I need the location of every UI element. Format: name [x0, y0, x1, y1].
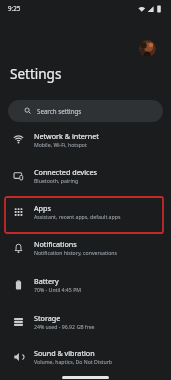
button[interactable]: Search settings [8, 100, 163, 122]
staticText: Volume, haptics, Do Not Disturb [34, 358, 113, 365]
staticText: Apps [34, 203, 51, 213]
staticText: Mobile, Wi-Fi, hotspot [34, 141, 87, 148]
staticText: Settings [10, 65, 62, 83]
staticText: 9:25 [8, 4, 21, 12]
staticText: Connected devices [34, 167, 97, 177]
button[interactable]: Apps [0, 194, 171, 230]
button[interactable]: Network & internet [0, 122, 171, 158]
staticText: Assistant, recent apps, default apps [34, 213, 121, 220]
staticText: Bluetooth, pairing [34, 177, 79, 184]
button[interactable]: Connected devices [0, 158, 171, 194]
button[interactable]: Battery [0, 267, 171, 303]
staticText: Notifications [34, 239, 77, 249]
staticText: Search settings [37, 107, 82, 115]
staticText: 70% - Until 4:45 PM [34, 286, 81, 293]
staticText: Sound & vibration [34, 348, 95, 358]
button[interactable]: Sound & vibration [0, 339, 171, 375]
button[interactable]: Notifications [0, 230, 171, 266]
button[interactable] [139, 40, 156, 57]
staticText: Storage [34, 313, 61, 323]
staticText: Battery [34, 276, 59, 286]
staticText: Network & internet [34, 131, 99, 141]
staticText: Notification history, conversations [34, 249, 118, 256]
staticText: 24% used - 96.92 GB free [34, 323, 95, 330]
button[interactable]: Storage [0, 304, 171, 340]
